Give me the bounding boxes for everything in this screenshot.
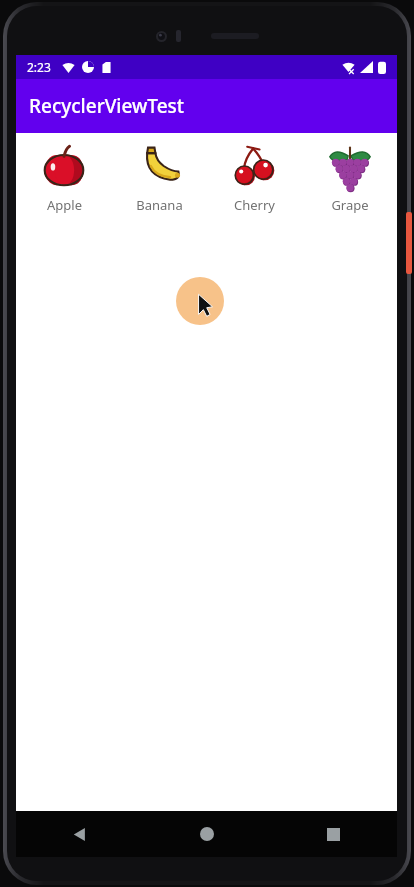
button[interactable]: Home	[143, 811, 270, 857]
button[interactable]: Banana	[112, 139, 207, 218]
button[interactable]: Recent apps	[270, 811, 397, 857]
staticText: RecyclerViewTest	[29, 93, 185, 119]
staticText: Banana	[136, 196, 183, 214]
button[interactable]: Apple	[16, 139, 112, 218]
button[interactable]: RecyclerViewTest	[16, 79, 397, 133]
other: Power button	[406, 212, 412, 274]
button[interactable]: Grape	[302, 139, 397, 218]
staticText: 2:23	[27, 59, 51, 75]
staticText: Apple	[47, 196, 82, 214]
button[interactable]: Back	[16, 811, 143, 857]
button[interactable]: Cherry	[207, 139, 302, 218]
staticText: Cherry	[234, 196, 275, 214]
staticText: Grape	[331, 196, 369, 214]
